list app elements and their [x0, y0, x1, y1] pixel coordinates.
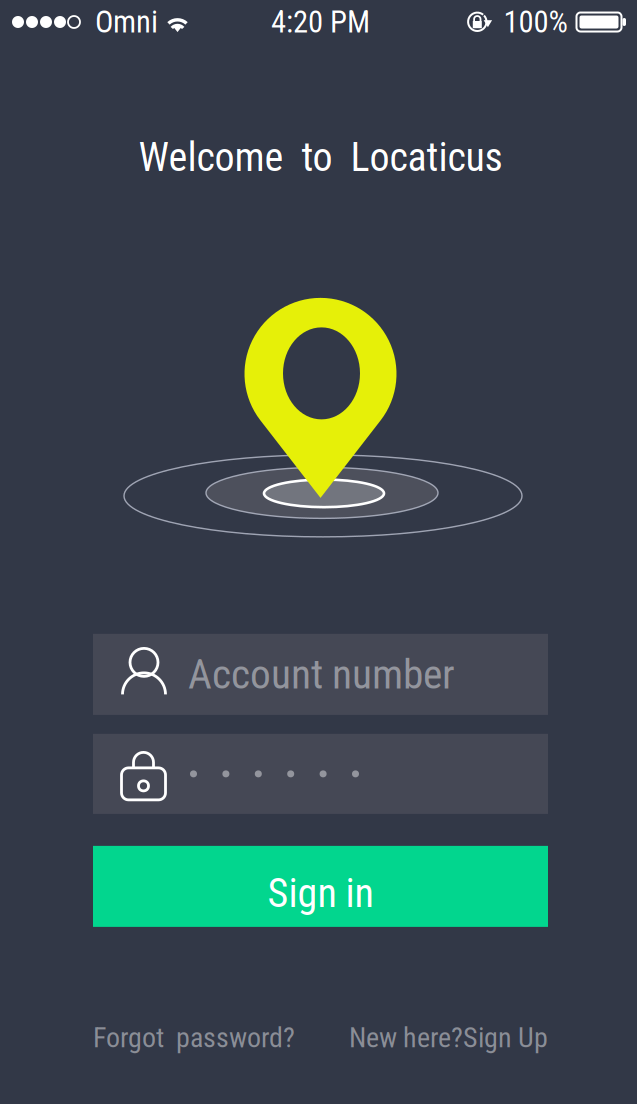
button[interactable]: New here?Sign Up — [349, 1021, 548, 1054]
staticText: Sign in — [267, 870, 373, 917]
staticText: Forgot password? — [93, 1021, 295, 1054]
staticText: New here?Sign Up — [349, 1021, 548, 1054]
button[interactable]: Account number — [93, 634, 548, 715]
staticText: Welcome to Locaticus — [138, 134, 502, 181]
staticText: 4:20 PM — [271, 4, 370, 40]
button[interactable]: Forgot password? — [93, 1021, 295, 1054]
button[interactable]: Password — [93, 734, 548, 814]
staticText: 100% — [503, 4, 567, 40]
staticText: Omni — [95, 4, 158, 40]
button[interactable]: Sign in — [93, 846, 548, 927]
staticText: Account number — [188, 650, 455, 699]
